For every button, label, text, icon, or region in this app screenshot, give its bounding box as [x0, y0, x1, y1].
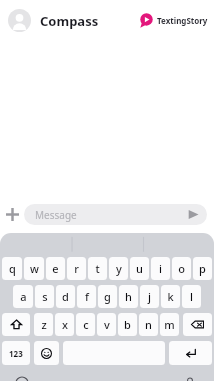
button[interactable]: 123: [2, 341, 30, 365]
button[interactable]: l: [182, 285, 201, 308]
button[interactable]: Send: [185, 206, 202, 223]
staticText: TextingStory: [157, 15, 208, 26]
staticText: f: [85, 289, 89, 304]
staticText: u: [136, 261, 143, 276]
button[interactable]: g: [98, 285, 117, 308]
staticText: z: [41, 317, 47, 332]
button[interactable]: i: [151, 257, 170, 280]
staticText: a: [20, 289, 27, 304]
button[interactable]: s: [35, 285, 54, 308]
staticText: q: [9, 261, 16, 276]
button[interactable]: f: [77, 285, 96, 308]
staticText: r: [74, 261, 79, 276]
button[interactable]: Shift: [2, 313, 30, 336]
staticText: c: [83, 317, 89, 332]
staticText: l: [190, 289, 193, 304]
staticText: d: [62, 289, 69, 304]
button[interactable]: n: [139, 313, 158, 336]
staticText: k: [167, 289, 174, 304]
staticText: t: [95, 261, 100, 276]
button[interactable]: z: [34, 313, 53, 336]
button[interactable]: v: [97, 313, 116, 336]
button[interactable]: Add attachment: [0, 200, 24, 228]
button[interactable]: o: [172, 257, 191, 280]
button[interactable]: Message: [24, 204, 207, 225]
staticText: o: [178, 261, 185, 276]
staticText: Message: [35, 208, 77, 222]
button[interactable]: Return: [169, 341, 212, 365]
staticText: g: [104, 289, 111, 304]
button[interactable]: Backspace: [183, 313, 212, 336]
staticText: j: [148, 289, 151, 304]
staticText: p: [199, 261, 206, 276]
button[interactable]: q: [2, 257, 22, 280]
staticText: i: [159, 261, 162, 276]
button[interactable]: a: [13, 285, 33, 308]
button[interactable]: y: [109, 257, 128, 280]
button[interactable]: x: [55, 313, 74, 336]
button[interactable]: c: [76, 313, 95, 336]
staticText: b: [124, 317, 131, 332]
staticText: h: [125, 289, 132, 304]
button[interactable]: Emoji: [34, 341, 59, 365]
staticText: Compass: [40, 12, 99, 30]
button[interactable]: m: [160, 313, 179, 336]
button[interactable]: r: [67, 257, 86, 280]
button[interactable]: p: [193, 257, 212, 280]
button[interactable]: d: [56, 285, 75, 308]
button[interactable]: b: [118, 313, 137, 336]
staticText: s: [42, 289, 48, 304]
staticText: x: [62, 317, 68, 332]
button[interactable]: j: [140, 285, 159, 308]
button[interactable]: Compass: [8, 9, 99, 32]
button[interactable]: t: [88, 257, 107, 280]
button[interactable]: w: [24, 257, 44, 280]
staticText: 123: [9, 348, 23, 359]
staticText: n: [145, 317, 152, 332]
button[interactable]: k: [161, 285, 180, 308]
staticText: w: [30, 261, 39, 276]
button[interactable]: h: [119, 285, 138, 308]
staticText: v: [104, 317, 110, 332]
button[interactable]: u: [130, 257, 149, 280]
staticText: m: [164, 317, 175, 332]
staticText: e: [52, 261, 59, 276]
button[interactable]: TextingStory: [139, 13, 208, 28]
staticText: y: [116, 261, 122, 276]
button[interactable]: e: [46, 257, 65, 280]
